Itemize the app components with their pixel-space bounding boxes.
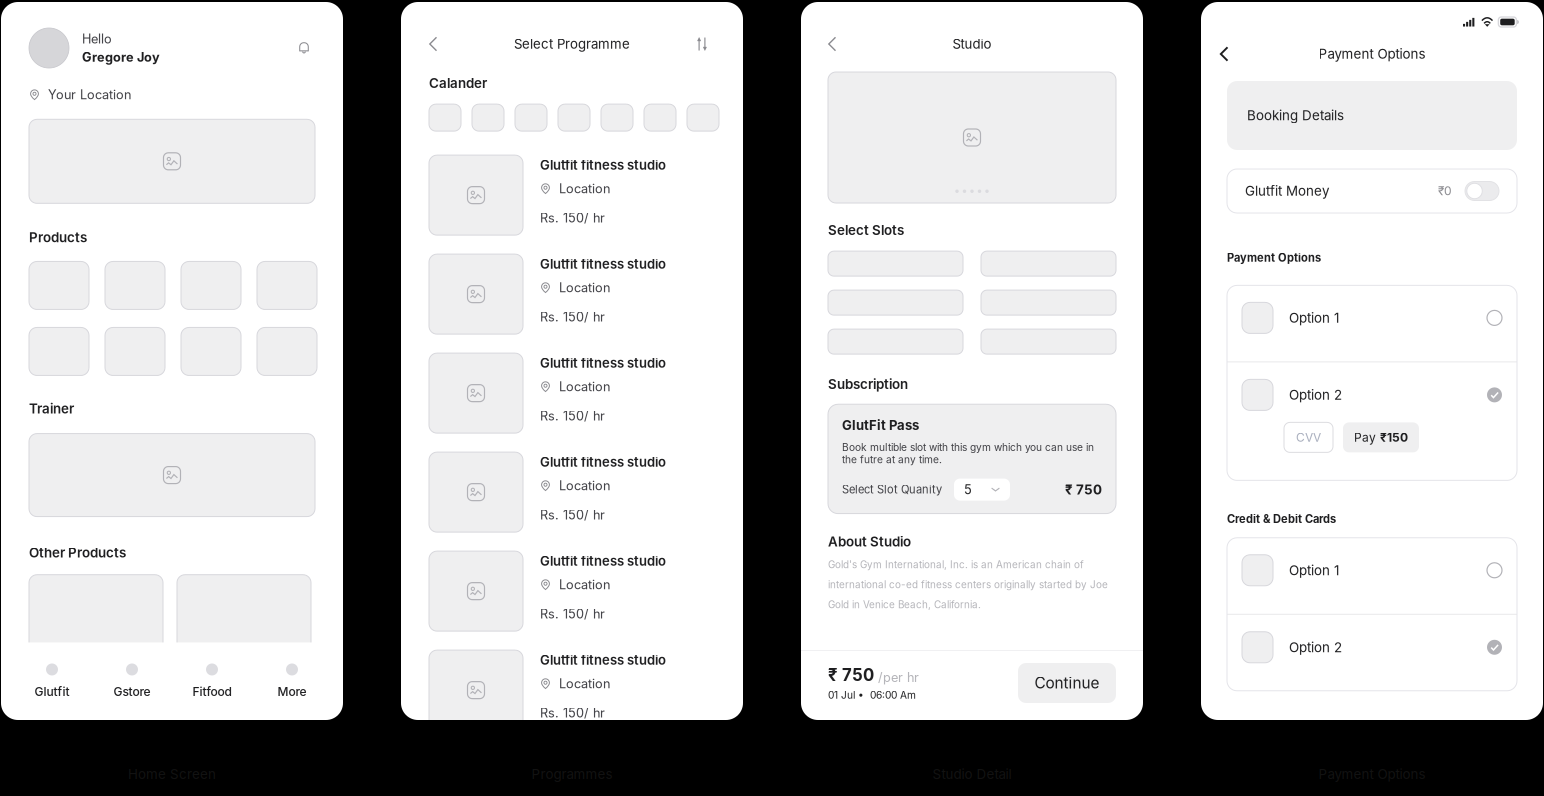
staticText: Location [559,577,610,592]
staticText: Location [559,676,610,691]
button[interactable]: More [252,663,332,699]
staticText: Credit & Debit Cards [1227,512,1336,526]
staticText: 5 [964,482,972,497]
staticText: Option 1 [1289,310,1339,326]
staticText: CVV [1296,430,1321,445]
button[interactable]: 5 [954,479,1010,501]
staticText: Gold in Venice Beach, California. [828,599,981,610]
button[interactable] [515,104,547,131]
staticText: ₹ 750 [1065,481,1102,498]
staticText: Payment Options [1227,251,1321,264]
button[interactable]: Fitfood [172,663,252,699]
button[interactable]: Glutfit [12,663,92,699]
staticText: Hello [82,31,112,46]
button[interactable] [601,104,633,131]
button[interactable] [472,104,504,131]
button[interactable]: Sort [689,32,715,56]
staticText: Calander [429,75,487,91]
button[interactable]: Glutfit fitness studio [429,551,715,631]
button[interactable] [981,329,1116,354]
staticText: Option 1 [1289,562,1339,578]
staticText: Subscription [828,376,908,392]
staticText: Option 2 [1289,639,1342,655]
staticText: Glutfit [34,684,69,699]
staticText: Location [559,478,610,493]
staticText: Location [559,181,610,196]
staticText: Book multible slot with this gym which y… [842,441,1094,466]
button[interactable]: Notifications [293,37,315,59]
button[interactable]: Glutfit fitness studio [429,155,715,235]
button[interactable]: Glutfit fitness studio [429,353,715,433]
staticText: Trainer [29,400,74,417]
staticText: Gstore [113,684,150,699]
button[interactable] [828,329,963,354]
staticText: Programmes [531,766,612,782]
staticText: 01 Jul • 06:00 Am [828,689,916,701]
button[interactable]: Back [828,31,854,57]
staticText: Rs. 150/ hr [540,705,605,721]
staticText: Rs. 150/ hr [540,309,605,325]
staticText: Pay [1354,430,1376,445]
staticText: Fitfood [192,684,231,699]
staticText: ₹150 [1380,430,1408,445]
button[interactable]: Option 2 [1227,362,1517,480]
button[interactable]: Gstore [92,663,172,699]
staticText: GlutFit Pass [842,417,919,433]
staticText: Booking Details [1247,107,1344,123]
button[interactable]: Option 2 [1227,615,1517,691]
staticText: Glutfit fitness studio [540,553,666,569]
staticText: Gold's Gym International, Inc. is an Ame… [828,559,1084,571]
button[interactable] [981,290,1116,315]
button[interactable]: Continue [1018,663,1116,703]
staticText: Products [29,229,87,245]
staticText: /per hr [878,670,919,685]
staticText: Studio [952,36,991,52]
staticText: About Studio [828,534,911,550]
button[interactable]: Back [1220,41,1246,67]
button[interactable]: Back [429,31,455,57]
staticText: ₹0 [1438,184,1452,198]
staticText: Rs. 150/ hr [540,408,605,424]
staticText: Your Location [48,87,131,102]
staticText: Location [559,379,610,394]
button[interactable]: Use Glutfit Money [1465,181,1499,200]
button[interactable]: Option 1 [1227,285,1517,361]
staticText: Home Screen [128,766,216,782]
button[interactable] [828,290,963,315]
button[interactable] [558,104,590,131]
staticText: Gregore Joy [82,49,160,65]
button[interactable]: Glutfit fitness studio [429,254,715,334]
staticText: Rs. 150/ hr [540,606,605,622]
staticText: Select Programme [514,36,630,52]
button[interactable] [644,104,676,131]
staticText: international co-ed fitness centers orig… [828,579,1108,591]
staticText: Glutfit Money [1245,183,1329,199]
staticText: Glutfit fitness studio [540,454,666,470]
staticText: Rs. 150/ hr [540,507,605,523]
staticText: Option 2 [1289,387,1342,403]
button[interactable] [828,251,963,276]
staticText: Other Products [29,545,126,561]
staticText: Glutfit fitness studio [540,157,666,173]
staticText: Payment Options [1318,766,1425,782]
staticText: Glutfit fitness studio [540,256,666,272]
staticText: Glutfit fitness studio [540,652,666,668]
staticText: Rs. 150/ hr [540,210,605,226]
staticText: Location [559,280,610,295]
button[interactable]: Glutfit fitness studio [429,452,715,532]
staticText: Select Slot Quanity [842,483,942,496]
button[interactable]: Option 1 [1227,538,1517,614]
button[interactable] [429,104,461,131]
staticText: Continue [1034,674,1099,692]
staticText: Payment Options [1318,46,1425,62]
button[interactable]: Glutfit fitness studio [429,650,715,730]
button[interactable]: Booking Details [1227,81,1517,150]
button[interactable] [981,251,1116,276]
staticText: ₹ 750 [828,665,874,685]
staticText: Glutfit fitness studio [540,355,666,371]
staticText: More [277,684,306,699]
staticText: Studio Detail [932,766,1011,782]
staticText: Select Slots [828,222,904,238]
button[interactable] [687,104,719,131]
